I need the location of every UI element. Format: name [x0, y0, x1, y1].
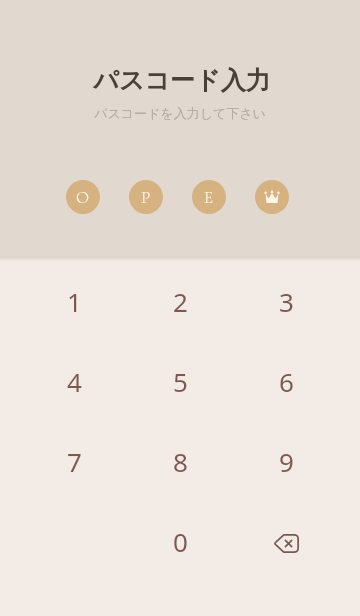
- button[interactable]: E: [192, 180, 226, 214]
- button[interactable]: [255, 180, 289, 214]
- button[interactable]: 6: [251, 351, 321, 411]
- staticText: O: [76, 187, 90, 208]
- staticText: 5: [173, 364, 188, 399]
- staticText: E: [204, 187, 214, 208]
- button[interactable]: P: [129, 180, 163, 214]
- staticText: パスコード入力: [93, 65, 271, 96]
- staticText: 3: [279, 284, 294, 319]
- button[interactable]: 7: [39, 431, 109, 491]
- button[interactable]: 0: [145, 511, 215, 571]
- button[interactable]: 5: [145, 351, 215, 411]
- button[interactable]: 1: [39, 271, 109, 331]
- staticText: 2: [173, 284, 188, 319]
- staticText: 6: [279, 364, 294, 399]
- staticText: 7: [67, 444, 82, 479]
- staticText: パスコードを入力して下さい: [94, 105, 266, 121]
- staticText: 9: [279, 444, 294, 479]
- staticText: 4: [67, 364, 82, 399]
- button[interactable]: 8: [145, 431, 215, 491]
- button[interactable]: 2: [145, 271, 215, 331]
- staticText: 1: [67, 284, 82, 319]
- button[interactable]: 4: [39, 351, 109, 411]
- button[interactable]: O: [66, 180, 100, 214]
- button[interactable]: 9: [251, 431, 321, 491]
- staticText: 0: [173, 524, 188, 559]
- staticText: P: [141, 187, 151, 208]
- button[interactable]: Delete: [251, 511, 321, 571]
- button[interactable]: 3: [251, 271, 321, 331]
- staticText: 8: [173, 444, 188, 479]
